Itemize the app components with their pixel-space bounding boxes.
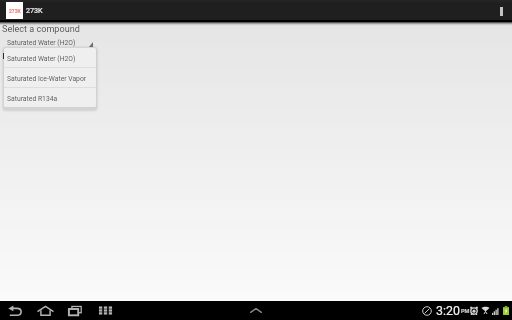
button[interactable]: Notifications	[243, 301, 269, 320]
button[interactable]: Saturated Water (H2O)	[0, 37, 96, 48]
staticText: 273K	[26, 6, 43, 14]
button[interactable]: All apps	[94, 301, 116, 320]
staticText: Select a compound	[2, 24, 80, 35]
staticText: Saturated Ice-Water Vapor	[7, 75, 87, 83]
staticText: PM	[461, 308, 470, 315]
button[interactable]: Back	[4, 301, 26, 320]
staticText: 3:20	[436, 303, 460, 318]
button[interactable]: More options	[490, 0, 512, 20]
button[interactable]: Saturated Ice-Water Vapor	[4, 68, 96, 87]
button[interactable]: Saturated Water (H2O)	[4, 48, 96, 67]
button[interactable]: Recent apps	[64, 301, 86, 320]
staticText: Saturated Water (H2O)	[7, 39, 76, 47]
button[interactable]: Saturated R134a	[4, 88, 96, 107]
button[interactable]: Home	[34, 301, 56, 320]
staticText: 273K	[9, 8, 21, 14]
staticText: Saturated R134a	[7, 95, 58, 103]
staticText: Saturated Water (H2O)	[7, 55, 76, 63]
